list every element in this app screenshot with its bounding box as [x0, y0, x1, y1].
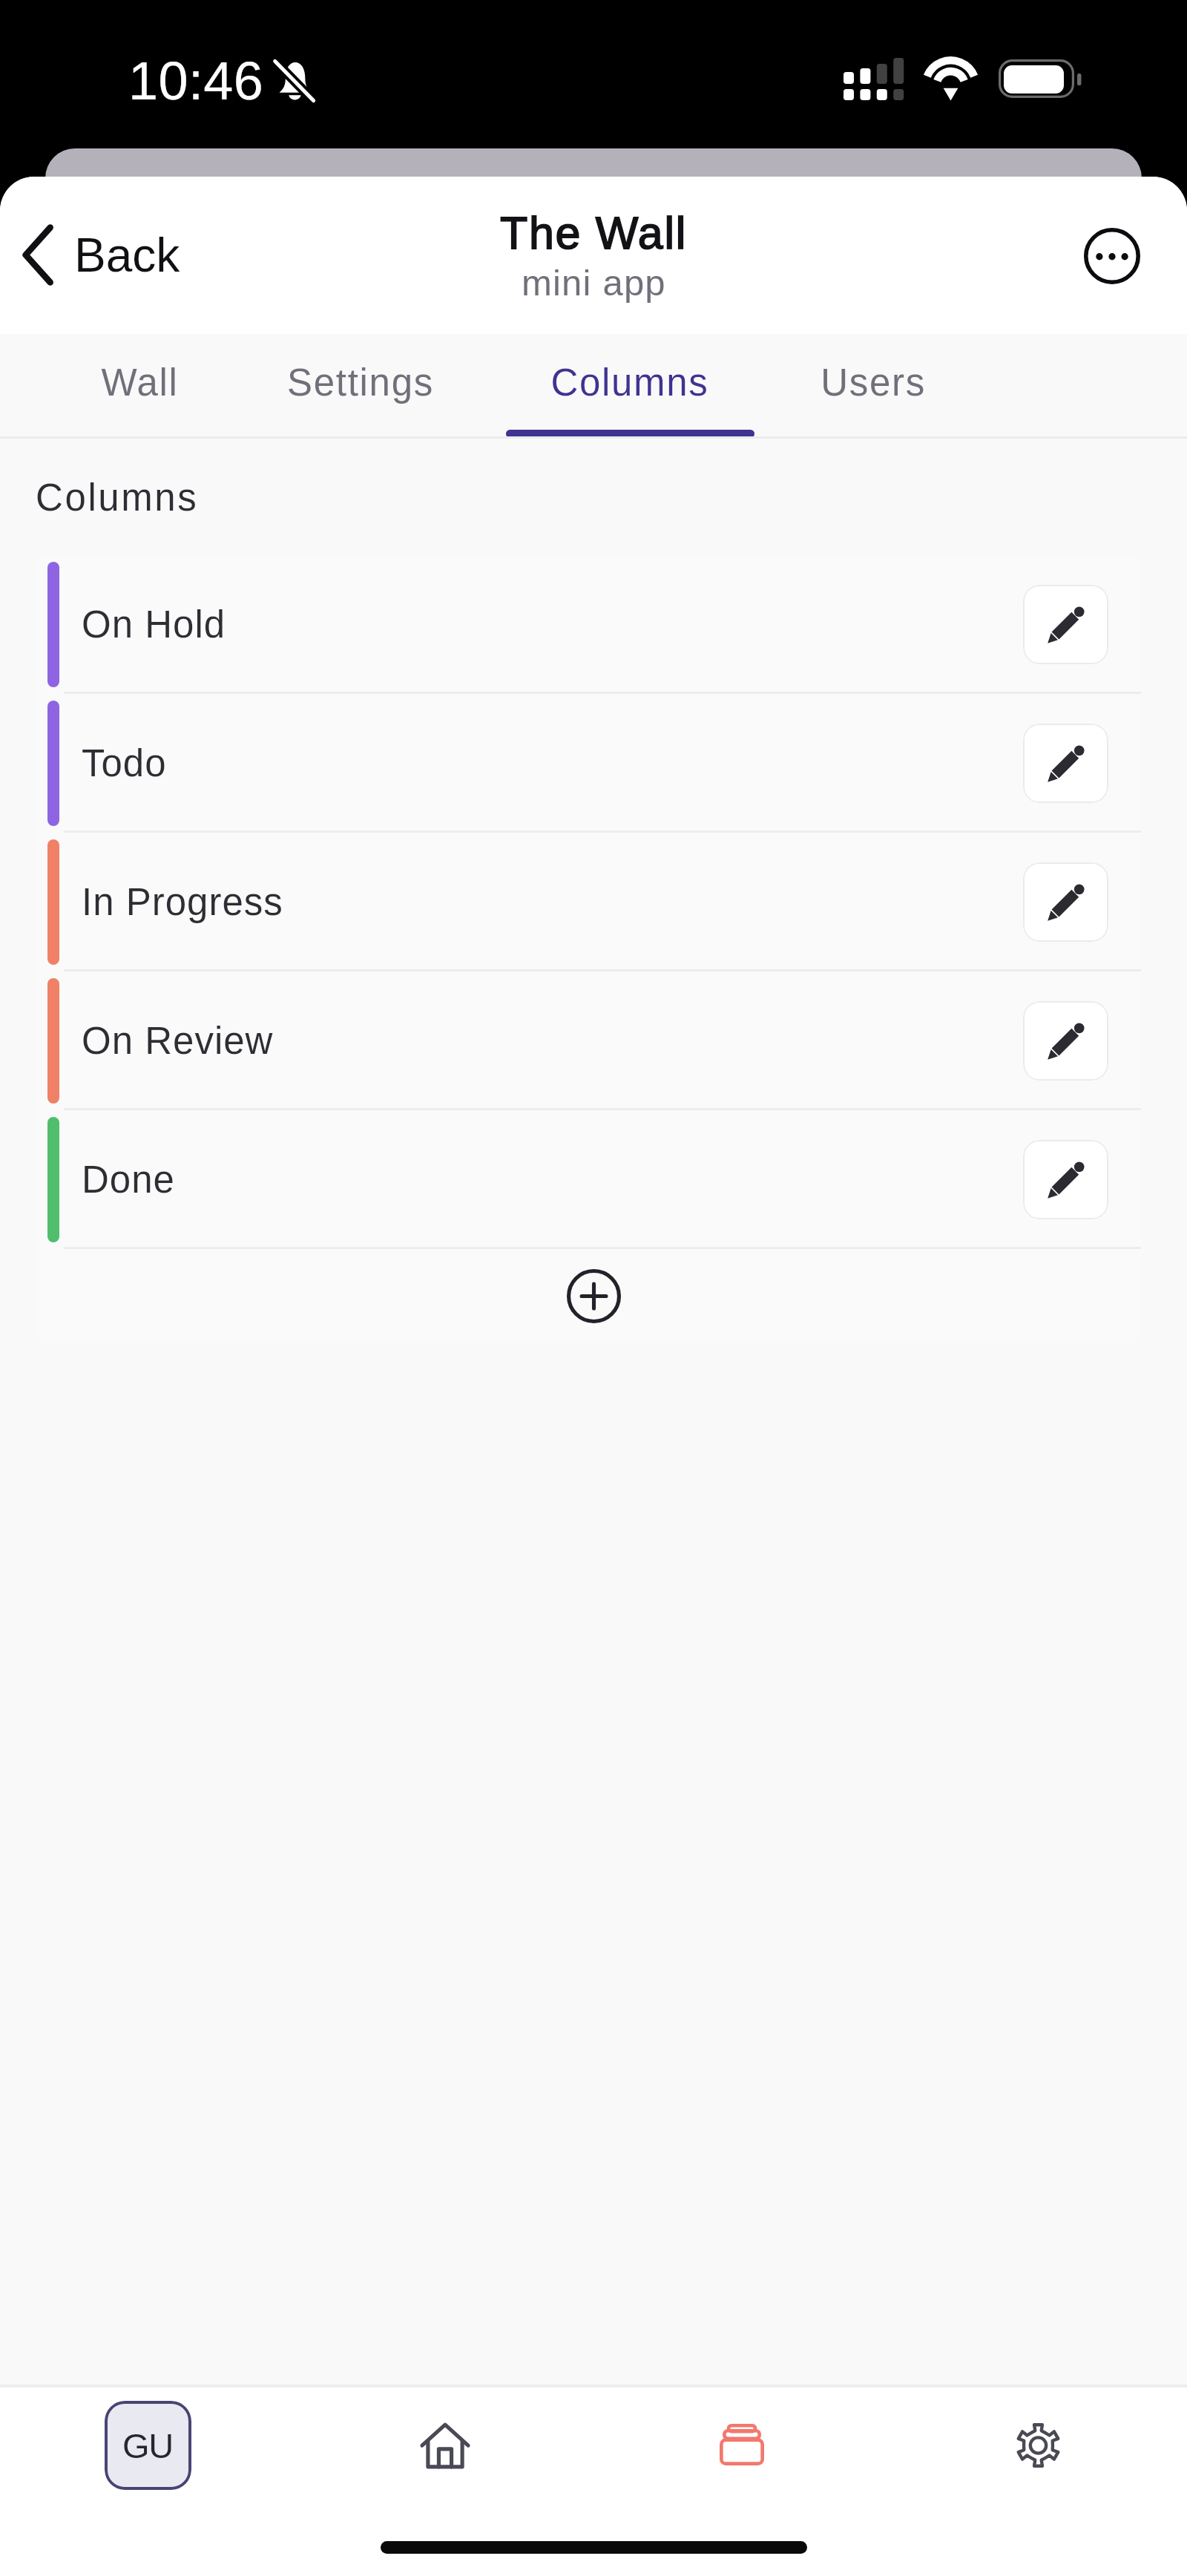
- staticText: The Wall: [500, 208, 688, 258]
- button[interactable]: Home: [371, 2387, 519, 2505]
- staticText: Back: [74, 229, 180, 282]
- staticText: On Review: [82, 1020, 274, 1062]
- button[interactable]: Todo: [34, 694, 1141, 833]
- staticText: Users: [821, 361, 926, 404]
- button[interactable]: Columns: [495, 334, 765, 439]
- button[interactable]: Edit On Review: [1023, 1001, 1108, 1081]
- button[interactable]: Edit On Hold: [1023, 585, 1108, 664]
- staticText: Wall: [101, 361, 179, 404]
- button[interactable]: Edit Todo: [1023, 724, 1108, 803]
- staticText: Settings: [287, 361, 434, 404]
- staticText: Columns: [550, 361, 709, 404]
- button[interactable]: On Hold: [34, 555, 1141, 694]
- button[interactable]: Settings: [964, 2387, 1112, 2505]
- staticText: Todo: [82, 742, 167, 784]
- staticText: Done: [82, 1158, 175, 1201]
- staticText: GU: [122, 2426, 174, 2465]
- staticText: Columns: [36, 476, 199, 519]
- button[interactable]: Settings: [226, 334, 496, 439]
- button[interactable]: Wall: [58, 334, 221, 439]
- button[interactable]: Done: [34, 1110, 1141, 1249]
- button[interactable]: Edit Done: [1023, 1140, 1108, 1219]
- button[interactable]: GU: [105, 2401, 191, 2490]
- staticText: mini app: [522, 263, 666, 304]
- button[interactable]: Edit In Progress: [1023, 862, 1108, 942]
- button[interactable]: Boards: [668, 2387, 816, 2505]
- staticText: 10:46: [128, 51, 264, 111]
- button[interactable]: On Review: [34, 971, 1141, 1110]
- button[interactable]: Add column: [34, 1249, 1141, 1343]
- button[interactable]: In Progress: [34, 833, 1141, 971]
- staticText: On Hold: [82, 603, 226, 646]
- staticText: In Progress: [82, 881, 283, 923]
- button[interactable]: Users: [777, 334, 970, 439]
- button[interactable]: More options: [1077, 221, 1147, 291]
- button[interactable]: Back: [0, 212, 201, 298]
